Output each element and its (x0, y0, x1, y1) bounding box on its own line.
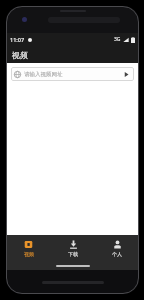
button[interactable]: 个人 (95, 235, 139, 262)
staticText: 视频 (24, 251, 34, 257)
staticText: 视频 (12, 50, 28, 60)
staticText: 请输入视频网址 (24, 71, 63, 78)
button[interactable]: 下载 (51, 235, 95, 262)
button[interactable]: 请输入视频网址 (11, 67, 134, 81)
staticText: 下载 (68, 251, 78, 257)
staticText: 3G (114, 36, 121, 43)
button[interactable]: 视频 (6, 235, 51, 262)
staticText: 11:07 (10, 36, 25, 43)
staticText: 个人 (112, 251, 122, 257)
button[interactable]: Play (122, 70, 131, 79)
